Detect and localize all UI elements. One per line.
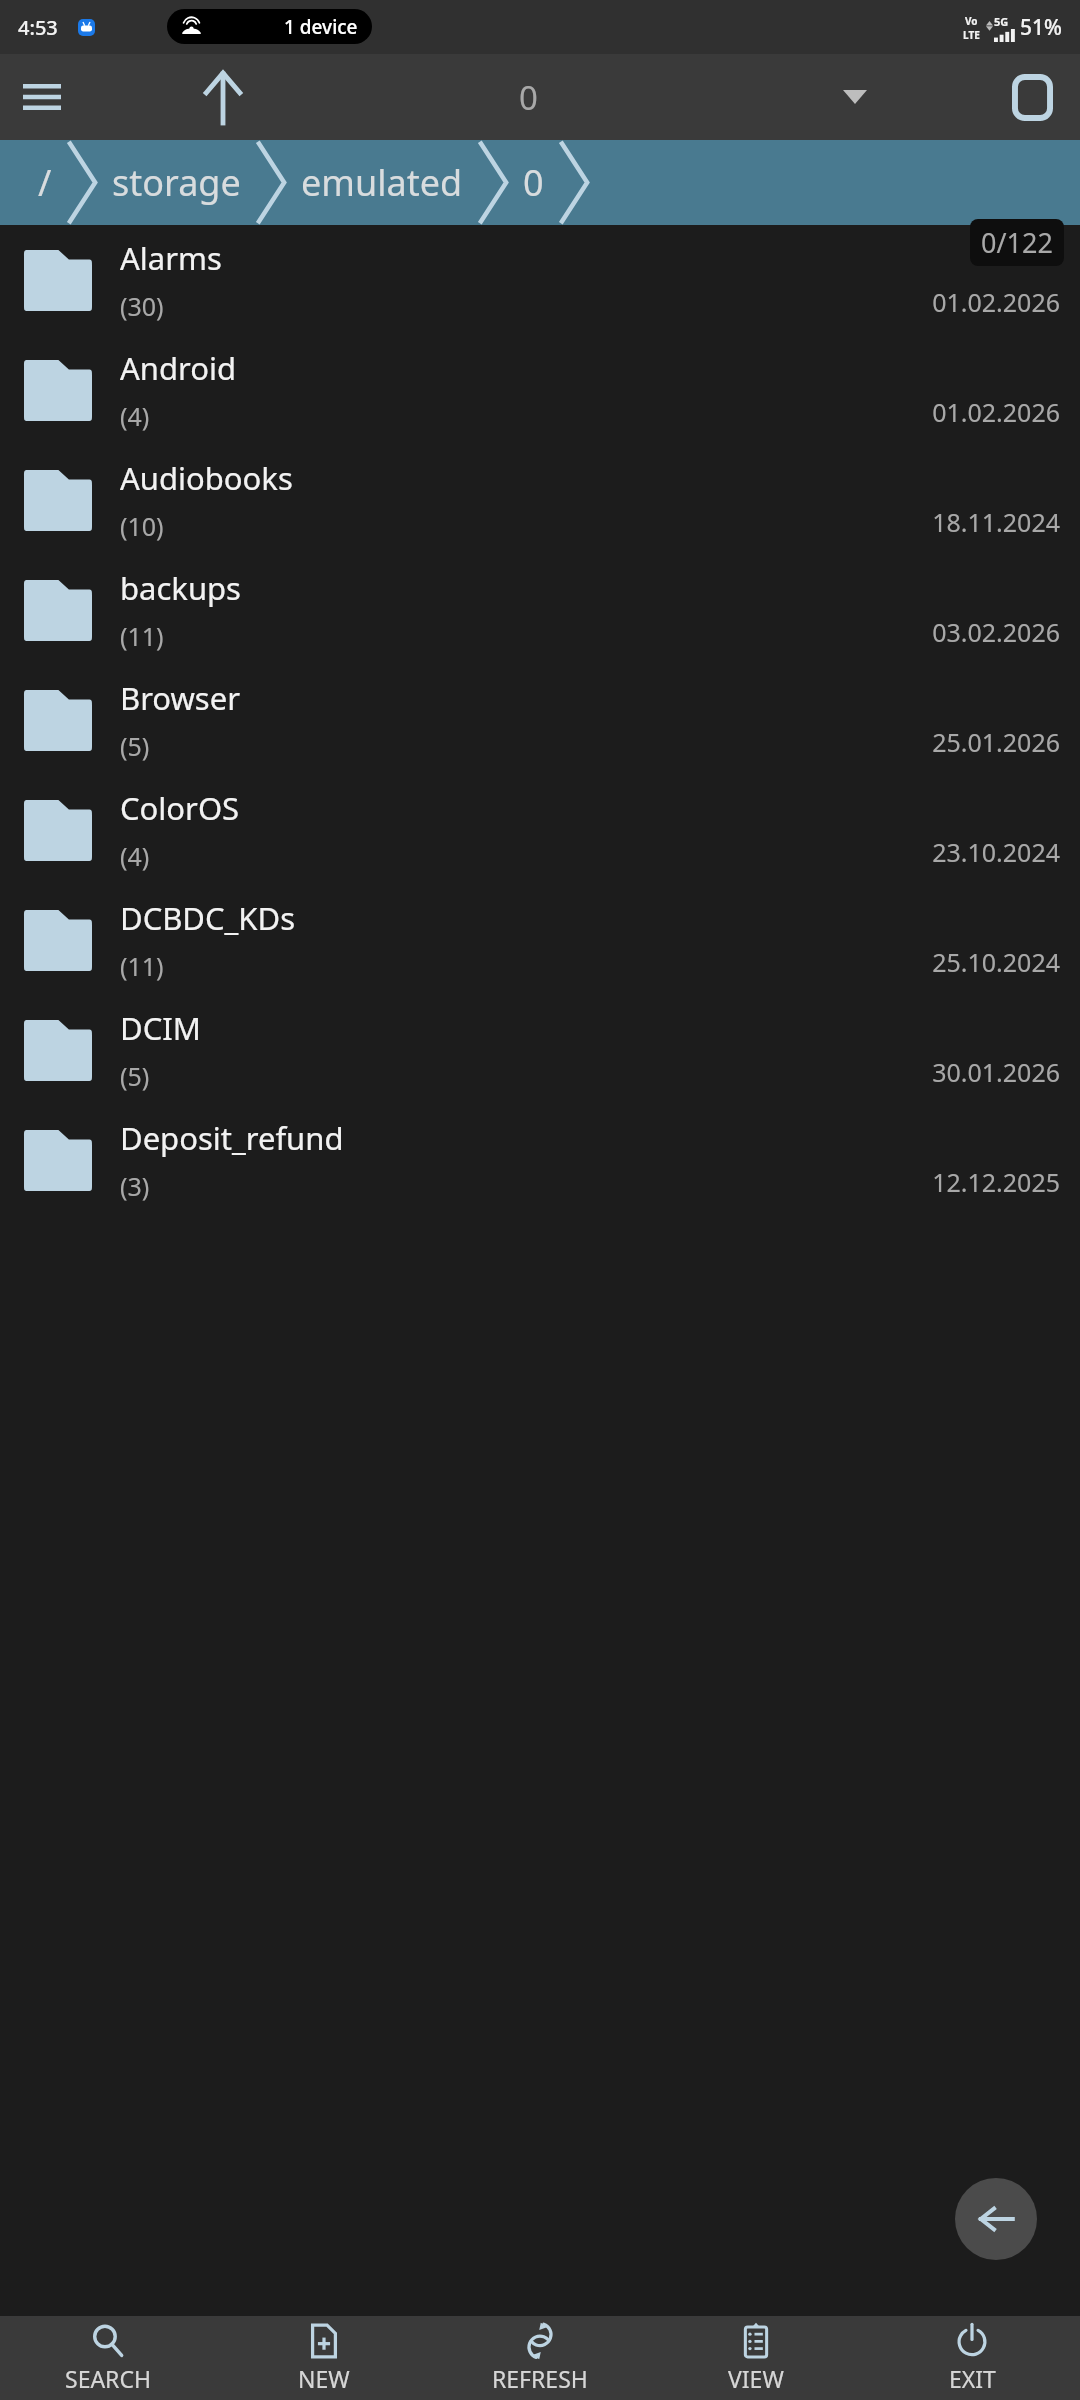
staticText: (30) xyxy=(120,289,164,323)
staticText: 30.01.2026 xyxy=(932,1055,1060,1089)
staticText: 25.10.2024 xyxy=(932,945,1060,979)
staticText: (4) xyxy=(120,839,150,873)
button[interactable]: Browser xyxy=(0,665,1080,775)
button[interactable]: Audiobooks xyxy=(0,445,1080,555)
staticText: Audiobooks xyxy=(120,457,293,499)
staticText: (11) xyxy=(120,619,164,653)
button[interactable]: EXIT xyxy=(864,2316,1080,2400)
button[interactable]: / xyxy=(38,140,52,225)
staticText: 0 xyxy=(523,158,544,207)
button[interactable]: Up xyxy=(186,60,260,134)
staticText: (3) xyxy=(120,1169,150,1203)
staticText: 5G xyxy=(994,14,1009,29)
staticText: 01.02.2026 xyxy=(932,285,1060,319)
staticText: NEW xyxy=(298,2363,350,2394)
staticText: Alarms xyxy=(120,237,222,279)
button[interactable]: 0 xyxy=(523,140,544,225)
staticText: EXIT xyxy=(949,2363,996,2394)
button[interactable]: REFRESH xyxy=(432,2316,648,2400)
button[interactable]: SEARCH xyxy=(0,2316,216,2400)
staticText: 4:53 xyxy=(18,14,58,41)
staticText: ColorOS xyxy=(120,787,240,829)
staticText: Vo xyxy=(965,14,978,28)
staticText: REFRESH xyxy=(492,2363,588,2394)
staticText: Deposit_refund xyxy=(120,1117,344,1159)
staticText: SEARCH xyxy=(65,2363,151,2394)
staticText: (11) xyxy=(120,949,164,983)
staticText: DCBDC_KDs xyxy=(120,897,296,939)
staticText: (4) xyxy=(120,399,150,433)
staticText: emulated xyxy=(301,158,463,207)
button[interactable]: Alarms xyxy=(0,225,1080,335)
button[interactable]: storage xyxy=(112,140,241,225)
staticText: 0/122 xyxy=(981,224,1053,261)
staticText: Android xyxy=(120,347,237,389)
button[interactable]: VIEW xyxy=(648,2316,864,2400)
staticText: Browser xyxy=(120,677,240,719)
staticText: (5) xyxy=(120,1059,150,1093)
staticText: storage xyxy=(112,158,241,207)
staticText: 01.02.2026 xyxy=(932,395,1060,429)
button[interactable]: Deposit_refund xyxy=(0,1105,1080,1215)
button[interactable]: Select all xyxy=(996,61,1068,133)
button[interactable]: emulated xyxy=(301,140,463,225)
staticText: (5) xyxy=(120,729,150,763)
button[interactable]: DCIM xyxy=(0,995,1080,1105)
button[interactable]: ColorOS xyxy=(0,775,1080,885)
staticText: 18.11.2024 xyxy=(932,505,1060,539)
staticText: VIEW xyxy=(728,2363,784,2394)
button[interactable]: Menu xyxy=(6,61,78,133)
button[interactable]: Android xyxy=(0,335,1080,445)
button[interactable]: DCBDC_KDs xyxy=(0,885,1080,995)
staticText: 1 device xyxy=(284,14,358,40)
staticText: DCIM xyxy=(120,1007,201,1049)
staticText: 51% xyxy=(1020,13,1062,42)
staticText: 23.10.2024 xyxy=(932,835,1060,869)
staticText: (10) xyxy=(120,509,164,543)
button[interactable]: Back xyxy=(955,2178,1037,2260)
staticText: LTE xyxy=(963,28,980,42)
staticText: 12.12.2025 xyxy=(932,1165,1060,1199)
staticText: 03.02.2026 xyxy=(932,615,1060,649)
staticText: 0 xyxy=(519,75,538,120)
button[interactable]: backups xyxy=(0,555,1080,665)
button[interactable]: NEW xyxy=(216,2316,432,2400)
button[interactable]: Sort xyxy=(820,62,890,132)
staticText: backups xyxy=(120,567,241,609)
staticText: / xyxy=(38,158,52,207)
staticText: 25.01.2026 xyxy=(932,725,1060,759)
